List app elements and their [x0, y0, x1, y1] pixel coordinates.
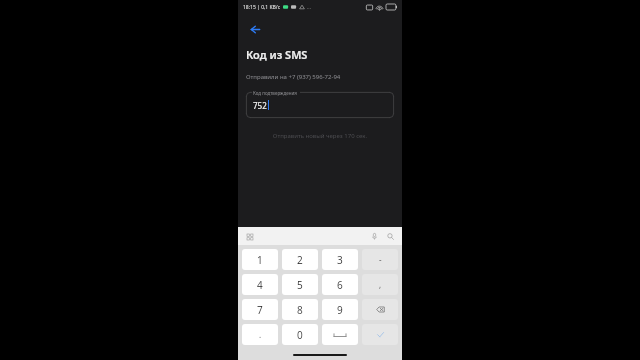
staticText: 8: [297, 303, 303, 317]
button[interactable]: 0: [282, 324, 318, 345]
staticText: 752: [253, 100, 267, 111]
button[interactable]: 1: [242, 249, 278, 270]
staticText: 6: [337, 278, 343, 292]
staticText: Отправили на +7 (937) 596-72-94: [246, 73, 341, 81]
staticText: 9: [337, 303, 343, 317]
button[interactable]: Пробел: [322, 324, 358, 345]
staticText: ...: [307, 4, 312, 11]
button[interactable]: 4: [242, 274, 278, 295]
button[interactable]: Удалить: [362, 299, 398, 320]
button[interactable]: 8: [282, 299, 318, 320]
button[interactable]: 9: [322, 299, 358, 320]
staticText: Отправить новый через 170 сек.: [246, 132, 394, 140]
staticText: 18:15 | 0,1 KB/c: [243, 4, 281, 11]
button[interactable]: [246, 92, 394, 118]
button[interactable]: Готово: [362, 324, 398, 345]
staticText: .: [259, 329, 262, 340]
staticText: 3: [337, 253, 343, 267]
staticText: 7: [257, 303, 263, 317]
staticText: 1: [257, 253, 263, 267]
button[interactable]: .: [242, 324, 278, 345]
staticText: Код подтверждения: [253, 90, 297, 96]
button[interactable]: 3: [322, 249, 358, 270]
staticText: ,: [379, 279, 382, 290]
staticText: 4: [257, 278, 263, 292]
staticText: 5: [297, 278, 303, 292]
button[interactable]: Поиск: [384, 230, 396, 242]
button[interactable]: Назад: [246, 20, 264, 38]
button[interactable]: 6: [322, 274, 358, 295]
staticText: 2: [297, 253, 303, 267]
button[interactable]: 5: [282, 274, 318, 295]
button[interactable]: ,: [362, 274, 398, 295]
button[interactable]: 7: [242, 299, 278, 320]
button[interactable]: -: [362, 249, 398, 270]
staticText: Код из SMS: [246, 47, 308, 62]
button[interactable]: Голосовой ввод: [368, 230, 380, 242]
staticText: -: [379, 254, 382, 265]
button[interactable]: Клавиатуры: [244, 231, 255, 242]
staticText: 0: [297, 328, 303, 342]
button[interactable]: 2: [282, 249, 318, 270]
